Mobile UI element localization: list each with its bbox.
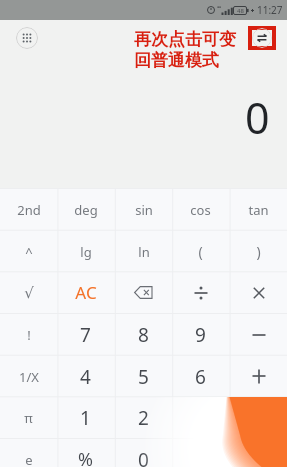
button[interactable]: 3 [172, 397, 229, 438]
staticText: ) [256, 242, 261, 261]
button[interactable]: . [172, 439, 229, 467]
staticText: ^ [25, 243, 33, 261]
staticText: 2 [138, 405, 149, 431]
staticText: lg [80, 243, 92, 261]
button[interactable]: tan [230, 189, 287, 230]
button[interactable]: Keypad [16, 27, 38, 49]
button[interactable]: 2 [115, 397, 172, 438]
button[interactable]: ln [115, 231, 172, 272]
button[interactable]: = [230, 397, 287, 438]
staticText: 11:27 [257, 3, 283, 17]
staticText: 7 [80, 322, 91, 348]
button[interactable]: ( [172, 231, 229, 272]
other: Delete [134, 286, 153, 299]
staticText: 再次点击可变 [134, 29, 236, 50]
button[interactable]: 8 [115, 314, 172, 355]
button[interactable]: cos [172, 189, 229, 230]
staticText: 6 [195, 364, 206, 390]
staticText: 5 [138, 364, 149, 390]
staticText: e [25, 451, 33, 467]
staticText: sin [135, 201, 153, 219]
button[interactable]: deg [57, 189, 114, 230]
staticText: cos [190, 201, 211, 219]
other: Plus [252, 369, 266, 384]
button[interactable]: 6 [172, 356, 229, 397]
button[interactable] [230, 439, 287, 467]
button[interactable]: lg [57, 231, 114, 272]
button[interactable]: sin [115, 189, 172, 230]
staticText: 0 [245, 88, 270, 147]
staticText: 8 [138, 322, 149, 348]
staticText: √ [24, 284, 34, 301]
staticText: 回普通模式 [134, 50, 219, 71]
button[interactable]: Divide [172, 272, 229, 313]
staticText: 1 [80, 405, 91, 431]
button[interactable]: ^ [0, 231, 57, 272]
staticText: ( [198, 242, 203, 261]
staticText: deg [74, 201, 98, 219]
button[interactable]: Switch mode [252, 28, 272, 48]
button[interactable]: 1 [57, 397, 114, 438]
button[interactable]: e [0, 439, 57, 467]
staticText: 9 [195, 322, 206, 348]
button[interactable]: 4 [57, 356, 114, 397]
other: Divide [194, 286, 208, 300]
button[interactable]: ! [0, 314, 57, 355]
button[interactable]: π [0, 397, 57, 438]
staticText: 48 [237, 7, 244, 15]
staticText: 0 [138, 447, 149, 467]
button[interactable]: AC [57, 272, 114, 313]
button[interactable]: % [57, 439, 114, 467]
staticText: ! [27, 326, 31, 344]
button[interactable]: 0 [115, 439, 172, 467]
button[interactable]: Multiply [230, 272, 287, 313]
button[interactable]: ) [230, 231, 287, 272]
button[interactable]: 5 [115, 356, 172, 397]
button[interactable]: √ [0, 272, 57, 313]
staticText: tan [248, 201, 269, 219]
staticText: 1/X [19, 368, 39, 386]
staticText: ln [138, 243, 150, 261]
staticText: AC [75, 281, 97, 304]
button[interactable]: Plus [230, 356, 287, 397]
button[interactable]: 9 [172, 314, 229, 355]
button[interactable]: 1/X [0, 356, 57, 397]
staticText: π [24, 409, 33, 427]
other: Minus [252, 328, 266, 342]
other: Multiply [253, 287, 265, 299]
staticText: % [78, 447, 93, 467]
staticText: 2nd [17, 201, 41, 219]
button[interactable]: Delete [115, 272, 172, 313]
button[interactable]: Minus [230, 314, 287, 355]
staticText: 4 [80, 364, 91, 390]
button[interactable]: 7 [57, 314, 114, 355]
button[interactable]: 2nd [0, 189, 57, 230]
